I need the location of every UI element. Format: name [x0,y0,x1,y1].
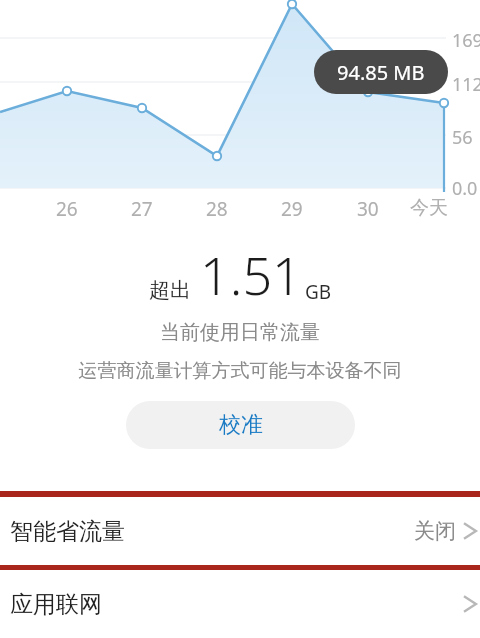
staticText: 今天 [410,196,448,220]
button[interactable]: 应用联网 [0,570,480,638]
staticText: 关闭 [414,518,456,544]
staticText: 169 [452,28,480,53]
staticText: 56 [452,125,473,150]
staticText: 26 [56,196,78,222]
staticText: 超出 [149,277,191,303]
other: Open 应用联网 [464,592,478,616]
staticText: GB [305,279,332,305]
staticText: 应用联网 [10,590,102,619]
button[interactable]: 智能省流量 [0,497,480,565]
staticText: 智能省流量 [10,517,125,546]
staticText: 27 [131,196,153,222]
staticText: 30 [357,196,379,222]
staticText: 校准 [219,411,263,439]
staticText: 当前使用日常流量 [0,320,480,345]
staticText: 运营商流量计算方式可能与本设备不同 [0,359,480,383]
staticText: 112 [452,72,480,97]
staticText: 0.0 [452,176,478,201]
other: Open 智能省流量 [464,519,478,543]
staticText: 1.51 [200,239,302,310]
staticText: 94.85 MB [337,59,425,86]
staticText: 28 [206,196,228,222]
button[interactable]: 校准 [126,401,355,449]
staticText: 29 [281,196,303,222]
